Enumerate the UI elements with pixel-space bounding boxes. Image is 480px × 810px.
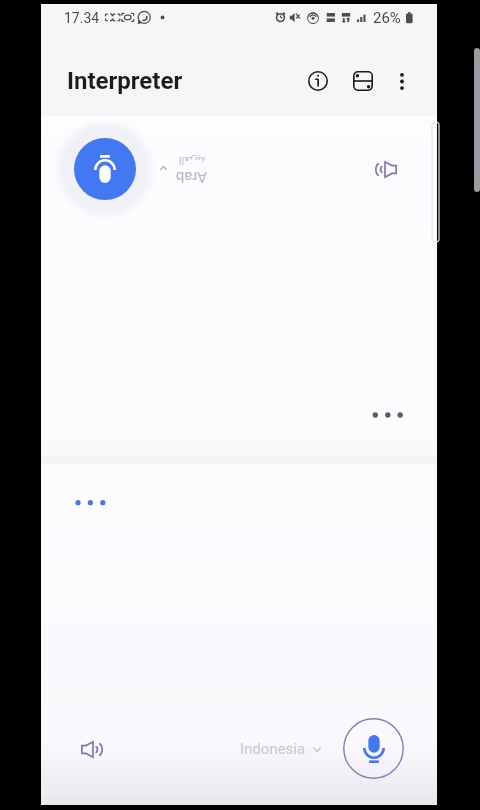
button[interactable]: Indonesia (240, 738, 321, 760)
button[interactable]: Conversation mode (343, 61, 383, 101)
button[interactable]: Info (298, 61, 338, 101)
staticText: 26% (373, 9, 401, 27)
button[interactable]: Play translation (69, 727, 113, 771)
staticText: Indonesia (240, 740, 306, 758)
button[interactable]: Play translation (365, 147, 409, 191)
button[interactable]: Speak Arabic (54, 118, 156, 220)
staticText: Interpreter (67, 67, 183, 95)
button[interactable]: More options (382, 61, 422, 101)
button[interactable]: Speak Indonesian (343, 718, 404, 779)
staticText: العربية (178, 154, 206, 166)
staticText: 17.34 (64, 10, 100, 26)
staticText: Arab (175, 168, 207, 186)
button[interactable]: Arab (153, 146, 257, 198)
